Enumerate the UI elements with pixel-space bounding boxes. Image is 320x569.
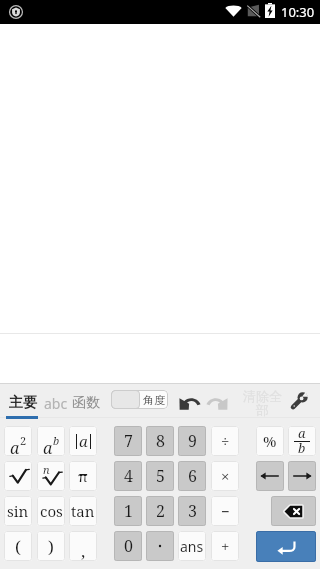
button[interactable]: Undo [179, 395, 201, 410]
button[interactable]: − [211, 496, 239, 526]
staticText: 5 [156, 465, 165, 487]
button[interactable]: + [211, 531, 239, 561]
button[interactable]: 4 [114, 461, 142, 491]
staticText: abc [44, 394, 68, 413]
other: Security [9, 5, 23, 19]
button[interactable]: 7 [114, 426, 142, 456]
button[interactable]: 9 [178, 426, 206, 456]
staticText: a [298, 426, 306, 442]
button[interactable]: π [69, 461, 97, 491]
staticText: , [81, 539, 86, 561]
staticText: a [10, 437, 20, 456]
staticText: ) [48, 535, 54, 558]
button[interactable]: 清除全部 [243, 384, 282, 422]
staticText: 9 [188, 430, 197, 452]
staticText: ans [180, 537, 204, 556]
button[interactable]: Angle unit toggle [111, 390, 168, 409]
staticText: 2 [20, 433, 27, 448]
button[interactable]: a [69, 426, 97, 456]
button[interactable]: 1 [114, 496, 142, 526]
staticText: ÷ [221, 431, 230, 451]
button[interactable]: Enter [256, 531, 316, 562]
staticText: + [221, 536, 230, 556]
button[interactable]: n [37, 461, 65, 491]
button[interactable]: Settings [290, 392, 308, 410]
staticText: 3 [188, 500, 197, 522]
staticText: b [298, 439, 306, 456]
staticText: 8 [156, 430, 165, 452]
staticText: 4 [124, 465, 133, 487]
staticText: 清除全部 [243, 388, 282, 419]
button[interactable]: % [256, 426, 284, 456]
button[interactable]: 2 [146, 496, 174, 526]
other: No SIM [247, 4, 260, 17]
button[interactable]: , [69, 531, 97, 561]
button[interactable]: 主要 [3, 388, 43, 418]
button[interactable]: 函数 [70, 388, 101, 418]
staticText: 函数 [72, 394, 100, 412]
button[interactable]: sin [4, 496, 32, 526]
staticText: 6 [188, 465, 197, 487]
button[interactable]: ) [37, 531, 65, 561]
staticText: % [263, 431, 277, 451]
staticText: 10:30 [281, 3, 315, 21]
staticText: 主要 [9, 394, 37, 412]
button[interactable]: Backspace [271, 496, 316, 526]
staticText: 7 [124, 430, 133, 452]
button[interactable]: 6 [178, 461, 206, 491]
staticText: n [43, 462, 50, 477]
button[interactable]: ÷ [211, 426, 239, 456]
button[interactable]: ans [178, 531, 206, 561]
button[interactable]: a [288, 426, 316, 456]
button[interactable]: 5 [146, 461, 174, 491]
staticText: − [221, 501, 230, 521]
button[interactable]: 0 [114, 531, 142, 561]
button[interactable]: 8 [146, 426, 174, 456]
staticText: cos [40, 501, 63, 521]
button[interactable]: 3 [178, 496, 206, 526]
button[interactable]: abc [43, 388, 69, 418]
button[interactable]: Move right [288, 461, 316, 491]
button[interactable]: Move left [256, 461, 284, 491]
button[interactable] [146, 531, 174, 561]
staticText: 1 [124, 500, 133, 522]
staticText: tan [71, 501, 95, 521]
button[interactable]: a [4, 426, 32, 456]
staticText: ( [15, 535, 21, 558]
button[interactable]: tan [69, 496, 97, 526]
staticText: × [221, 466, 230, 486]
button[interactable] [4, 461, 32, 491]
button[interactable]: × [211, 461, 239, 491]
staticText: π [78, 466, 88, 486]
staticText: 2 [156, 500, 165, 522]
staticText: a [79, 431, 88, 451]
button[interactable]: cos [37, 496, 65, 526]
staticText: sin [7, 501, 29, 521]
button[interactable]: ( [4, 531, 32, 561]
staticText: a [43, 437, 53, 456]
button[interactable]: a [37, 426, 65, 456]
button[interactable]: Redo [206, 395, 228, 410]
staticText: 角度 [143, 393, 165, 407]
staticText: b [53, 433, 60, 448]
staticText: 0 [124, 535, 133, 557]
